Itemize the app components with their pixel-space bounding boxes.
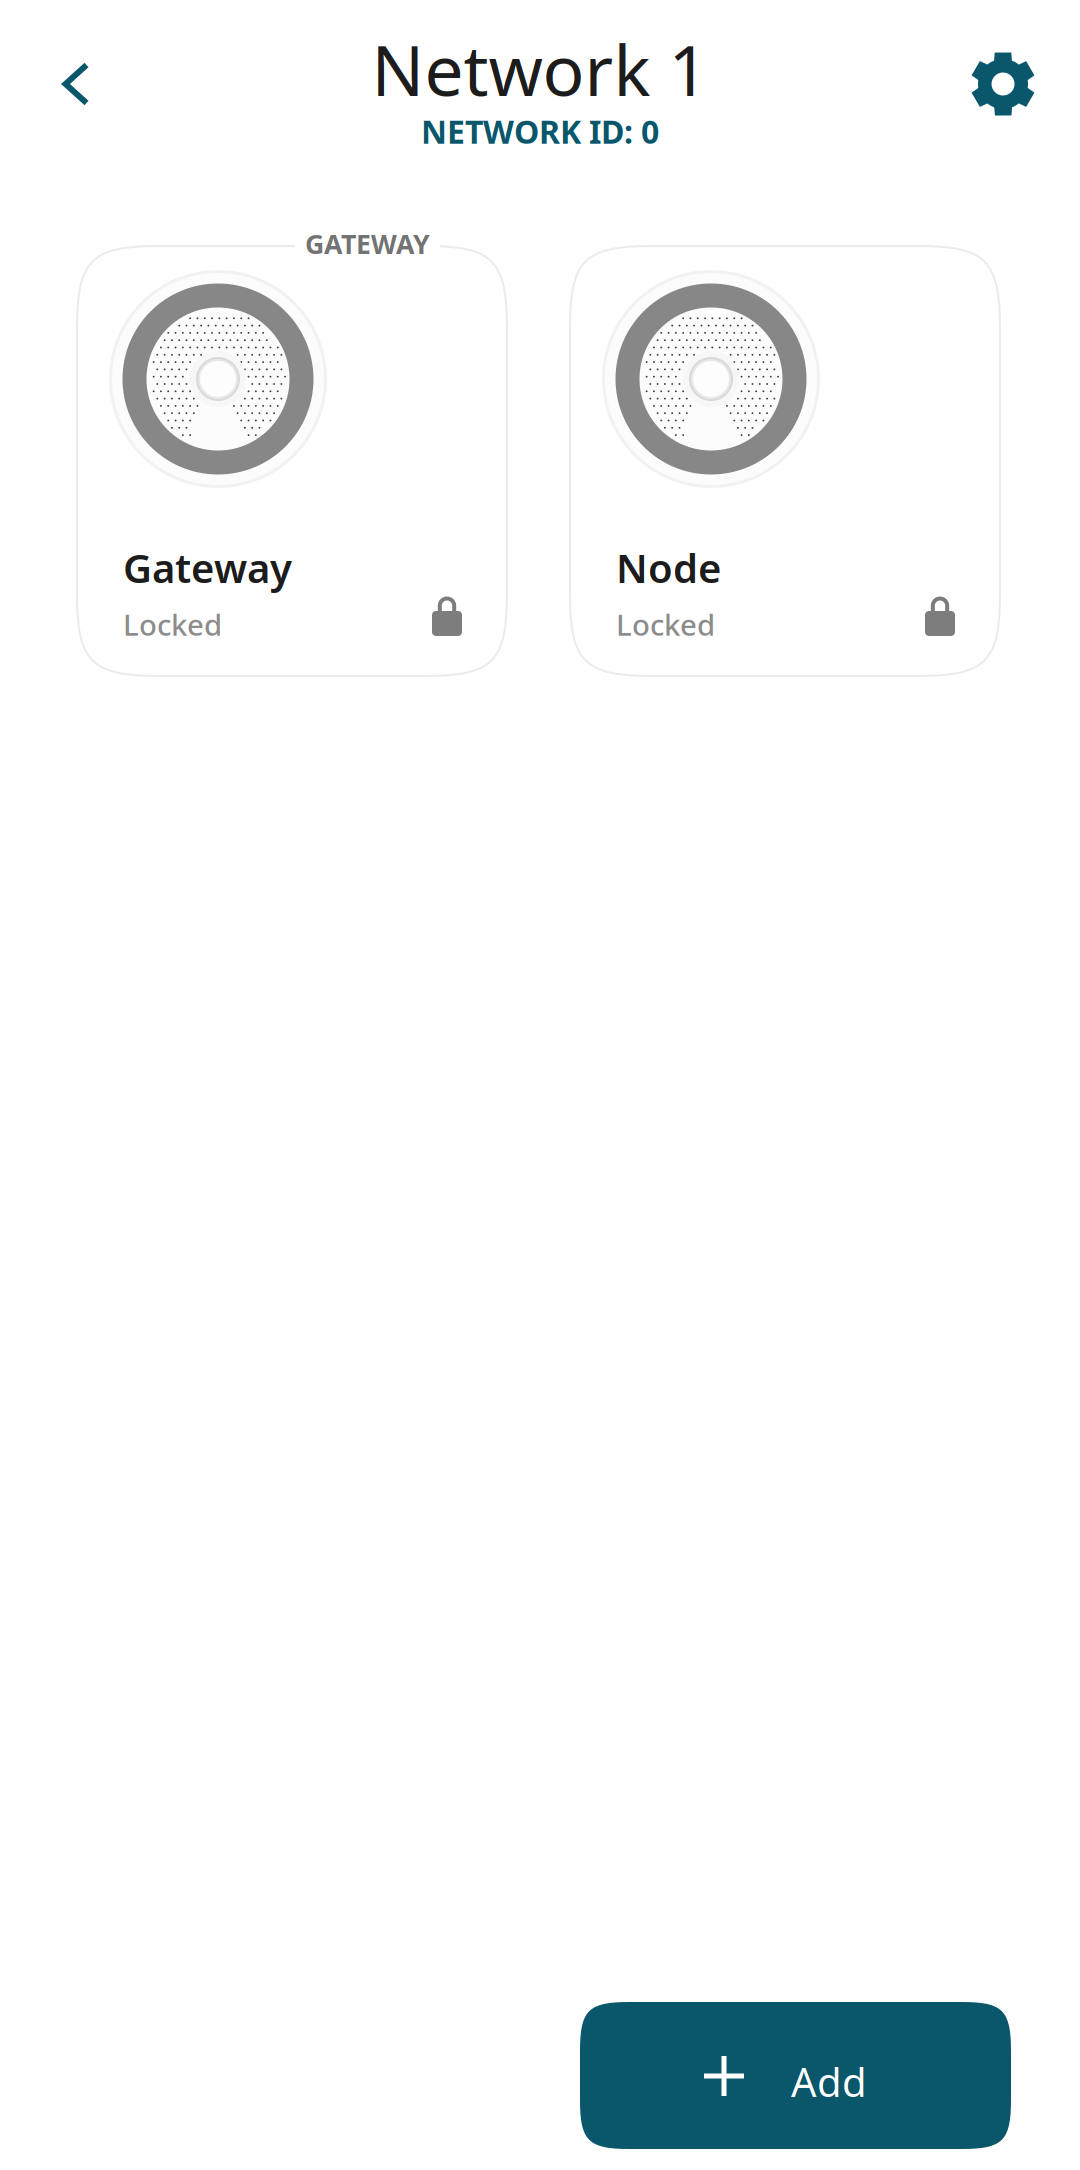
staticText: NETWORK ID: 0 — [421, 110, 659, 152]
staticText: Network 1 — [371, 23, 708, 115]
staticText: Gateway — [123, 541, 292, 594]
staticText: Locked — [123, 605, 222, 644]
button[interactable]: Add — [580, 2002, 1011, 2149]
button[interactable]: Node — [570, 246, 1000, 676]
staticText: Add — [791, 2055, 867, 2108]
staticText: Locked — [616, 605, 715, 644]
button[interactable]: Back — [28, 36, 124, 132]
staticText: GATEWAY — [305, 226, 430, 261]
button[interactable]: Gateway — [77, 246, 507, 676]
staticText: Node — [616, 541, 721, 594]
button[interactable]: Settings — [955, 36, 1051, 132]
